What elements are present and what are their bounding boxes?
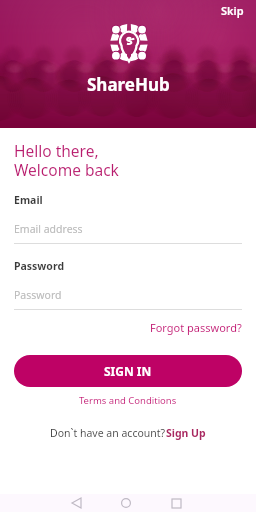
staticText: Hello there, Welcome back xyxy=(14,140,119,180)
staticText: ShareHub xyxy=(87,73,170,96)
button[interactable]: Skip xyxy=(207,0,256,24)
staticText: Email xyxy=(14,193,43,207)
staticText: Terms and Conditions xyxy=(79,394,177,407)
button[interactable]: Terms and Conditions xyxy=(77,392,179,409)
staticText: Email address xyxy=(14,222,83,236)
button[interactable]: Sign Up xyxy=(166,426,206,440)
staticText: Forgot password? xyxy=(150,320,242,335)
staticText: Password xyxy=(14,288,62,302)
staticText: Skip xyxy=(221,3,244,18)
staticText: Don`t have an account? xyxy=(50,426,166,440)
button[interactable]: Forgot password? xyxy=(150,317,242,338)
button[interactable]: SIGN IN xyxy=(14,355,242,387)
staticText: Password xyxy=(14,259,65,273)
button[interactable]: Recents xyxy=(151,494,201,512)
staticText: SIGN IN xyxy=(104,363,152,379)
button[interactable]: Home xyxy=(101,494,151,512)
button[interactable]: Back xyxy=(51,494,101,512)
staticText: Sign Up xyxy=(166,426,206,440)
